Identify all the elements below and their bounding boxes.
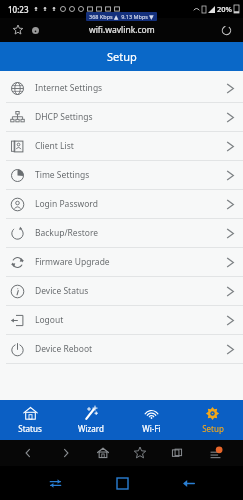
staticText: Status [18, 423, 42, 434]
staticText: 10:23 [8, 4, 29, 15]
button[interactable]: DHCP Settings [0, 103, 243, 131]
staticText: Setup [202, 423, 224, 434]
button[interactable]: Home [111, 472, 133, 494]
button[interactable]: Tabs [168, 444, 186, 462]
staticText: DHCP Settings [35, 111, 226, 123]
button[interactable]: Status [0, 400, 60, 440]
button[interactable]: Reload [217, 21, 235, 39]
button[interactable]: Device Status [0, 277, 243, 305]
button[interactable]: Logout [0, 306, 243, 334]
button[interactable]: Client List [0, 132, 243, 160]
staticText: wifi.wavlink.com [89, 24, 155, 36]
staticText: Login Password [35, 198, 226, 210]
button[interactable]: Internet Settings [0, 74, 243, 102]
button[interactable]: Forward [57, 444, 75, 462]
staticText: Backup/Restore [35, 227, 226, 239]
staticText: 368 Kbps ▲ 9.13 Mbps ▼ [89, 13, 154, 20]
staticText: Wizard [78, 423, 104, 434]
button[interactable]: Recent apps [44, 472, 66, 494]
staticText: 20% [217, 4, 232, 14]
button[interactable]: Menu [206, 444, 224, 462]
button[interactable]: Back [177, 472, 199, 494]
button[interactable]: Bookmark [10, 22, 26, 38]
staticText: Device Reboot [35, 343, 226, 355]
button[interactable]: Setup [182, 400, 243, 440]
staticText: Time Settings [35, 169, 226, 181]
staticText: Wi-Fi [142, 423, 161, 434]
button[interactable]: Device Reboot [0, 335, 243, 363]
button[interactable]: Bookmarks [131, 444, 149, 462]
button[interactable]: Wi-Fi [121, 400, 182, 440]
button[interactable]: Firmware Upgrade [0, 248, 243, 276]
staticText: Device Status [35, 285, 226, 297]
button[interactable]: Wizard [60, 400, 121, 440]
button[interactable]: Backup/Restore [0, 219, 243, 247]
staticText: Firmware Upgrade [35, 256, 226, 268]
button[interactable]: Login Password [0, 190, 243, 218]
button[interactable]: Time Settings [0, 161, 243, 189]
staticText: Setup [107, 49, 137, 64]
staticText: Internet Settings [35, 82, 226, 94]
button[interactable]: Page info [28, 23, 42, 37]
button[interactable]: Back [19, 444, 37, 462]
staticText: Logout [35, 314, 226, 326]
staticText: Client List [35, 140, 226, 152]
button[interactable]: Home [94, 444, 112, 462]
